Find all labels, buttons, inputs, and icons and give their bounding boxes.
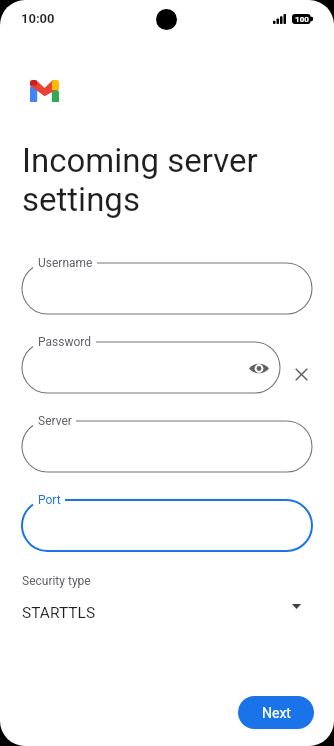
staticText: Next <box>262 705 291 721</box>
button[interactable]: Password <box>22 342 280 393</box>
staticText: Security type <box>22 574 91 588</box>
staticText: Username <box>38 256 93 270</box>
button[interactable]: STARTTLS <box>0 598 334 628</box>
staticText: Server <box>38 414 72 428</box>
button[interactable]: Username <box>22 263 312 314</box>
button[interactable]: Port <box>22 500 312 551</box>
staticText: STARTTLS <box>22 604 96 622</box>
button[interactable]: Show password <box>246 355 272 381</box>
staticText: 100 <box>293 15 311 24</box>
staticText: Password <box>38 335 92 349</box>
button[interactable]: Clear password <box>288 361 314 387</box>
staticText: 10:00 <box>21 11 55 26</box>
staticText: Incoming server settings <box>22 141 296 219</box>
button[interactable]: Server <box>22 421 312 472</box>
staticText: Port <box>38 493 61 507</box>
button[interactable]: Next <box>238 696 314 729</box>
